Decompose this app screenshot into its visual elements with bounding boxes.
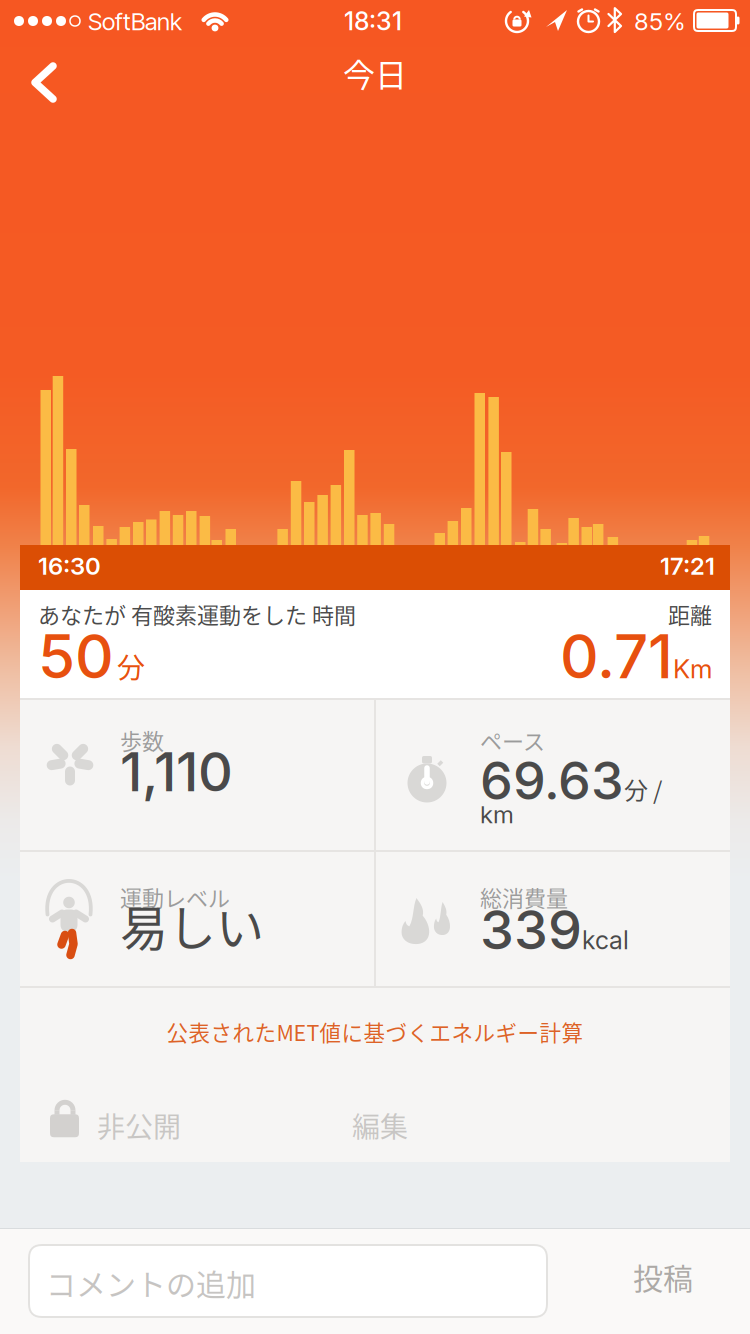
- staticText: 16:30: [38, 551, 101, 580]
- staticText: 運動レベル: [120, 881, 230, 913]
- staticText: 0.71: [560, 620, 673, 693]
- staticText: 分 /: [624, 771, 662, 806]
- button[interactable]: 非公開: [50, 1097, 181, 1137]
- staticText: 編集: [352, 1105, 408, 1145]
- staticText: 非公開: [97, 1105, 181, 1145]
- staticText: 歩数: [120, 724, 164, 756]
- staticText: SoftBank: [88, 7, 182, 36]
- staticText: 公表されたMET値に基づくエネルギー計算: [166, 1016, 583, 1047]
- staticText: 1,110: [120, 739, 233, 804]
- staticText: Km: [673, 653, 712, 684]
- staticText: kcal: [582, 925, 629, 955]
- button[interactable]: Back: [0, 40, 76, 108]
- staticText: 18:31: [344, 6, 402, 36]
- staticText: 50: [38, 620, 114, 693]
- staticText: ペース: [480, 724, 545, 756]
- staticText: あなたが 有酸素運動をした 時間: [38, 598, 356, 630]
- staticText: 距離: [668, 598, 712, 630]
- staticText: 総消費量: [480, 881, 568, 913]
- staticText: 69.63: [480, 749, 624, 812]
- staticText: 投稿: [633, 1255, 693, 1298]
- staticText: コメントの追加: [46, 1261, 256, 1304]
- button[interactable]: コメントの追加: [28, 1244, 548, 1318]
- staticText: 85%: [634, 7, 686, 36]
- button[interactable]: 投稿: [633, 1255, 693, 1298]
- staticText: 今日: [343, 50, 407, 96]
- staticText: 分: [117, 646, 145, 686]
- staticText: 339: [480, 897, 582, 962]
- button[interactable]: 編集: [352, 1105, 408, 1145]
- staticText: 易しい: [120, 890, 264, 959]
- staticText: km: [480, 800, 514, 829]
- staticText: 17:21: [660, 551, 715, 580]
